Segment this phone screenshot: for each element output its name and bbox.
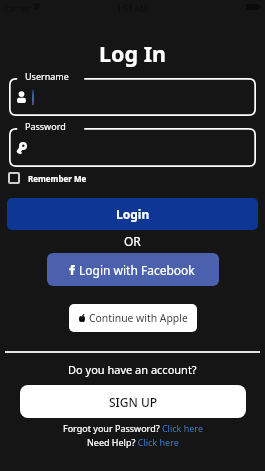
button[interactable]: Continue with Apple xyxy=(69,304,197,332)
staticText: Login xyxy=(116,206,150,222)
button[interactable]: Remember Me xyxy=(8,172,87,184)
button[interactable]: Login xyxy=(7,198,258,230)
button[interactable]: SIGN UP xyxy=(20,385,246,418)
staticText: Password xyxy=(25,120,66,132)
staticText: Remember Me xyxy=(28,173,87,184)
staticText: Do you have an account? xyxy=(68,362,197,377)
staticText: Need Help? Click here xyxy=(87,436,179,448)
staticText: Forgot your Password? Click here xyxy=(63,422,203,434)
button[interactable]: Username xyxy=(9,78,256,116)
staticText: SIGN UP xyxy=(109,394,158,410)
staticText: Username xyxy=(25,70,69,82)
staticText: Log In xyxy=(99,39,166,68)
staticText: OR xyxy=(124,233,141,249)
button[interactable]: Login with Facebook xyxy=(47,253,219,286)
button[interactable]: Forgot your Password? Click here xyxy=(63,422,203,434)
button[interactable]: Password xyxy=(9,128,256,167)
button[interactable]: Need Help? Click here xyxy=(87,436,179,448)
staticText: Continue with Apple xyxy=(89,311,188,325)
staticText: Login with Facebook xyxy=(79,262,195,278)
